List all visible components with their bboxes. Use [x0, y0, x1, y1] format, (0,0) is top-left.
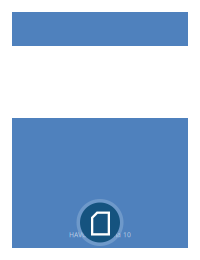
staticText: HAVO 4 · Thema 10 [69, 230, 131, 239]
button[interactable]: Open document [12, 118, 188, 248]
